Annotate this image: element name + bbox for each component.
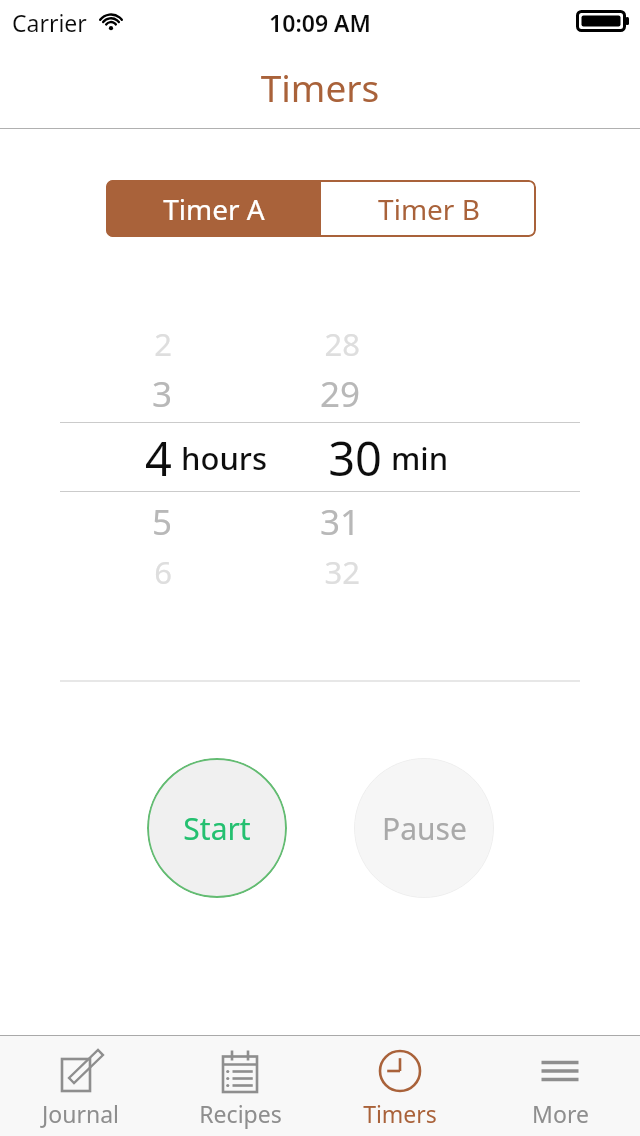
staticText: Timers (0, 62, 640, 112)
button[interactable]: Timer B (321, 180, 536, 237)
button[interactable]: More (480, 1036, 640, 1136)
staticText: Timers (363, 1098, 437, 1129)
staticText: 6 (154, 551, 172, 593)
button[interactable]: 30 (222, 424, 382, 492)
staticText: Timer B (378, 190, 480, 228)
button[interactable]: Journal (0, 1036, 160, 1136)
staticText: 3 (151, 370, 172, 418)
staticText: Pause (382, 808, 467, 849)
staticText: 4 (145, 426, 172, 490)
staticText: hours (181, 437, 267, 479)
staticText: 32 (324, 551, 360, 593)
button[interactable]: Start (147, 758, 287, 898)
button[interactable]: Recipes (160, 1036, 320, 1136)
other: More (535, 1046, 585, 1096)
staticText: Carrier (12, 7, 87, 38)
button[interactable]: hours (181, 428, 321, 488)
other: Recipes (215, 1046, 265, 1096)
staticText: 28 (324, 323, 360, 365)
staticText: 10:09 AM (0, 7, 640, 38)
staticText: 29 (319, 370, 360, 418)
button[interactable]: Timer A (106, 180, 321, 237)
button[interactable]: min (391, 428, 531, 488)
staticText: Recipes (199, 1098, 282, 1129)
other: Journal (55, 1046, 105, 1096)
button[interactable]: Timers (320, 1036, 480, 1136)
staticText: min (391, 437, 449, 479)
staticText: 31 (319, 498, 360, 546)
staticText: More (532, 1098, 589, 1129)
button[interactable]: 4 (12, 424, 172, 492)
staticText: 5 (151, 498, 172, 546)
staticText: Start (183, 808, 251, 849)
button[interactable]: Pause (354, 758, 494, 898)
other: Timers (375, 1046, 425, 1096)
staticText: 30 (328, 426, 382, 490)
staticText: 2 (154, 323, 172, 365)
staticText: Timer A (163, 190, 265, 228)
staticText: Journal (42, 1098, 119, 1129)
